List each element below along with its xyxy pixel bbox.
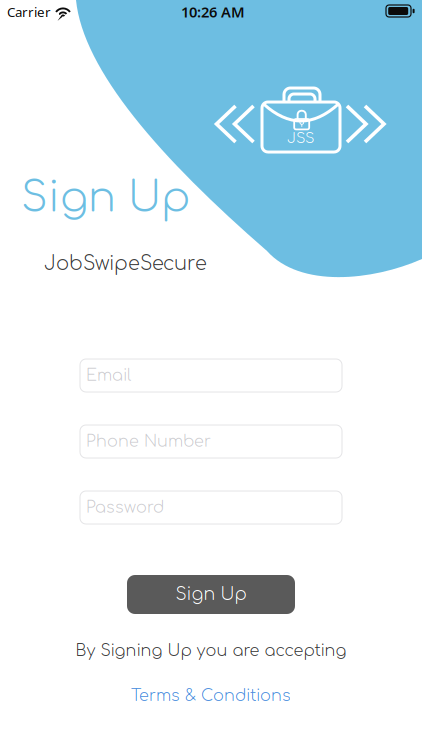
button[interactable]: Email xyxy=(80,359,342,392)
button[interactable]: Terms & Conditions xyxy=(131,687,291,705)
button[interactable]: Sign Up xyxy=(127,575,295,614)
staticText: Password xyxy=(86,499,164,516)
staticText: Sign Up xyxy=(175,585,246,604)
button[interactable]: Password xyxy=(80,491,342,524)
staticText: Carrier xyxy=(7,3,51,21)
button[interactable]: Phone Number xyxy=(80,425,342,458)
staticText: JSS xyxy=(287,130,314,146)
staticText: 10:26 AM xyxy=(181,2,245,21)
staticText: By Signing Up you are accepting xyxy=(75,642,346,660)
staticText: JobSwipeSecure xyxy=(44,253,207,275)
staticText: Phone Number xyxy=(86,433,211,450)
staticText: Email xyxy=(86,367,131,384)
staticText: Sign Up xyxy=(21,175,190,221)
staticText: Terms & Conditions xyxy=(131,687,291,705)
